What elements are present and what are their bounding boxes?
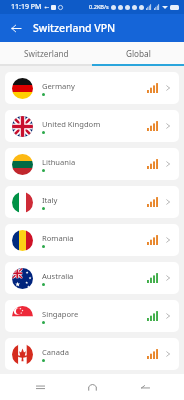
button[interactable]: Home: [79, 374, 105, 400]
staticText: Lithuania: [42, 157, 76, 167]
staticText: Canada: [42, 347, 69, 357]
button[interactable]: Switzerland: [0, 42, 92, 64]
button[interactable]: Singapore: [5, 300, 179, 332]
button[interactable]: Romania: [5, 224, 179, 256]
staticText: Singapore: [42, 309, 79, 319]
staticText: Switzerland VPN: [33, 21, 116, 35]
button[interactable]: Germany: [5, 72, 179, 104]
button[interactable]: Recents: [27, 374, 53, 400]
staticText: Italy: [42, 195, 58, 205]
staticText: 0.2KB/s: [89, 3, 109, 11]
button[interactable]: Lithuania: [5, 148, 179, 180]
button[interactable]: Canada: [5, 338, 179, 370]
staticText: Romania: [42, 233, 74, 243]
button[interactable]: Back: [132, 374, 158, 400]
staticText: Global: [126, 48, 151, 59]
button[interactable]: Global: [92, 42, 184, 64]
button[interactable]: Australia: [5, 262, 179, 294]
staticText: Australia: [42, 271, 74, 281]
staticText: Germany: [42, 81, 75, 91]
staticText: 11:19 PM: [11, 2, 42, 12]
staticText: United Kingdom: [42, 119, 101, 129]
button[interactable]: United Kingdom: [5, 110, 179, 142]
button[interactable]: Back: [6, 18, 26, 38]
staticText: Switzerland: [24, 48, 69, 59]
button[interactable]: Italy: [5, 186, 179, 218]
